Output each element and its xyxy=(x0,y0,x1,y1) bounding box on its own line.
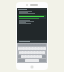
button[interactable]: Key xyxy=(27,51,30,54)
button[interactable]: Key xyxy=(30,55,33,58)
button[interactable] xyxy=(18,15,46,17)
button[interactable]: Key xyxy=(30,51,33,54)
button[interactable]: Key xyxy=(43,47,46,50)
button[interactable]: Key xyxy=(39,55,42,58)
button[interactable]: Key xyxy=(33,55,36,58)
button[interactable]: Key xyxy=(36,55,39,58)
button[interactable]: Key xyxy=(34,47,37,50)
button[interactable]: Key xyxy=(37,47,40,50)
button[interactable]: Key xyxy=(27,55,30,58)
button[interactable] xyxy=(17,8,47,10)
button[interactable]: Key xyxy=(33,51,36,54)
button[interactable] xyxy=(18,17,46,19)
button[interactable]: Key xyxy=(40,47,43,50)
button[interactable]: Key xyxy=(21,51,24,54)
button[interactable]: Home xyxy=(30,65,34,69)
button[interactable] xyxy=(17,40,47,43)
button[interactable]: Key xyxy=(20,47,22,50)
button[interactable]: Key xyxy=(22,47,25,50)
button[interactable]: Key xyxy=(21,55,24,58)
button[interactable]: Key xyxy=(28,47,31,50)
button[interactable]: Key xyxy=(31,47,34,50)
button[interactable]: Key xyxy=(36,51,39,54)
button[interactable]: Key xyxy=(19,51,21,54)
button[interactable]: Key xyxy=(42,51,45,54)
button[interactable]: Key xyxy=(24,51,27,54)
button[interactable]: Key xyxy=(39,51,42,54)
button[interactable]: Key xyxy=(25,47,28,50)
button[interactable]: Key xyxy=(24,55,27,58)
button[interactable]: Key xyxy=(18,47,20,50)
